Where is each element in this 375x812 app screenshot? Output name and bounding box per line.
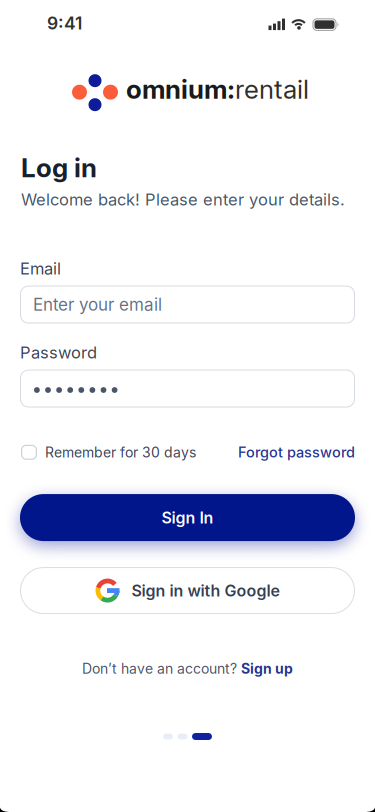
staticText: Remember for 30 days	[45, 444, 196, 461]
staticText: Forgot password	[238, 443, 355, 461]
button[interactable]: Sign In	[20, 494, 355, 541]
button[interactable]: Sign in with Google	[20, 567, 355, 614]
button[interactable]: Don’t have an account?	[82, 660, 293, 677]
staticText: Log in	[21, 152, 97, 184]
staticText: Don’t have an account?	[82, 660, 237, 677]
button[interactable]: Remember for 30 days	[21, 444, 196, 461]
staticText: Welcome back! Please enter your details.	[21, 190, 345, 210]
staticText: Sign in with Google	[131, 581, 279, 600]
staticText: rentail	[235, 73, 309, 105]
button[interactable]: Forgot password	[238, 443, 355, 461]
staticText: Email	[20, 259, 61, 279]
staticText: Sign up	[241, 660, 293, 677]
staticText: Enter your email	[33, 294, 162, 315]
button[interactable]: Email	[20, 286, 355, 324]
staticText: 9:41	[47, 12, 82, 34]
staticText: Sign In	[161, 508, 213, 527]
staticText: Password	[20, 343, 97, 363]
button[interactable]: Password	[20, 369, 355, 407]
staticText: omnium:	[126, 73, 235, 105]
